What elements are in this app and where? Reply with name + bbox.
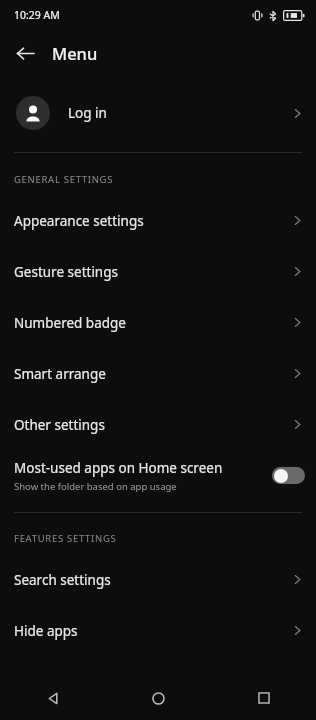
staticText: Search settings: [14, 571, 111, 589]
button[interactable]: Appearance settings: [0, 195, 316, 246]
button[interactable]: Numbered badge: [0, 297, 316, 348]
button[interactable]: Back: [8, 36, 42, 70]
button[interactable]: Gesture settings: [0, 246, 316, 297]
staticText: Most-used apps on Home screen: [14, 459, 223, 477]
button[interactable]: Search settings: [0, 554, 316, 605]
button[interactable]: Back: [0, 676, 106, 720]
button[interactable]: Unhide recent apps: [0, 656, 316, 707]
staticText: Other settings: [14, 416, 105, 434]
button[interactable]: Most-used apps on Home screen toggle: [272, 467, 305, 484]
staticText: GENERAL SETTINGS: [14, 173, 114, 186]
button[interactable]: Most-used apps on Home screen: [0, 450, 316, 501]
button[interactable]: Smart arrange: [0, 348, 316, 399]
button[interactable]: Other settings: [0, 399, 316, 450]
staticText: Gesture settings: [14, 263, 118, 281]
staticText: Hide apps: [14, 622, 78, 640]
staticText: Menu: [52, 42, 98, 64]
button[interactable]: Log in: [0, 90, 316, 136]
staticText: Show the folder based on app usage: [14, 480, 177, 493]
button[interactable]: Recent apps: [211, 676, 316, 720]
staticText: Smart arrange: [14, 365, 106, 383]
staticText: Log in: [68, 104, 107, 122]
staticText: Numbered badge: [14, 314, 126, 332]
staticText: Appearance settings: [14, 212, 144, 230]
button[interactable]: Home: [106, 676, 211, 720]
button[interactable]: Hide apps: [0, 605, 316, 656]
staticText: FEATURES SETTINGS: [14, 532, 117, 545]
staticText: 10:29 AM: [14, 8, 60, 22]
